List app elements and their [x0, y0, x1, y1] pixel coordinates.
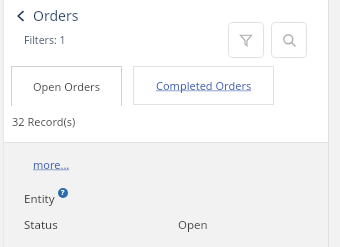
- staticText: 32 Record(s): [12, 114, 76, 129]
- staticText: Status: [24, 217, 58, 233]
- button[interactable]: Back: [14, 6, 79, 25]
- button[interactable]: Filters: 1: [24, 33, 66, 47]
- button[interactable]: Help: [58, 188, 68, 198]
- staticText: Orders: [33, 6, 79, 25]
- staticText: Entity: [24, 191, 55, 207]
- button[interactable]: Search: [271, 22, 307, 58]
- button[interactable]: Open Orders: [11, 66, 122, 106]
- button[interactable]: Completed Orders: [133, 66, 274, 105]
- button[interactable]: Filter: [228, 22, 264, 58]
- staticText: more...: [33, 157, 70, 172]
- staticText: Completed Orders: [156, 78, 252, 93]
- button[interactable]: more...: [33, 157, 70, 172]
- other: Back: [14, 9, 28, 23]
- staticText: Open: [178, 217, 208, 233]
- staticText: Filters: 1: [24, 33, 66, 47]
- button[interactable]: Status: [4, 217, 328, 233]
- staticText: ?: [61, 188, 65, 198]
- staticText: Open Orders: [33, 79, 100, 94]
